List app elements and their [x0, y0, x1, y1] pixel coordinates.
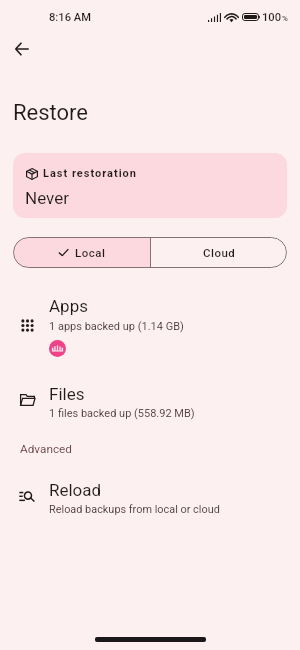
button[interactable]: Cloud — [151, 237, 287, 268]
button[interactable]: Last restoration — [13, 153, 287, 218]
button[interactable]: Files — [0, 376, 300, 422]
staticText: Last restoration — [43, 167, 137, 180]
button[interactable]: Back — [6, 33, 38, 65]
staticText: Restore — [13, 100, 89, 126]
button[interactable]: Reload — [0, 472, 300, 518]
button[interactable]: Apps — [0, 288, 300, 362]
staticText: 1 files backed up (558.92 MB) — [49, 407, 195, 420]
staticText: Apps — [49, 296, 88, 316]
staticText: 100 — [262, 11, 282, 24]
staticText: Advanced — [20, 442, 72, 456]
staticText: Reload backups from local or cloud — [49, 503, 220, 516]
button[interactable]: Local — [13, 237, 150, 268]
staticText: Never — [25, 188, 69, 208]
staticText: Local — [75, 246, 106, 259]
staticText: Files — [49, 384, 85, 404]
staticText: Cloud — [203, 246, 236, 259]
staticText: 8:16 AM — [49, 11, 92, 24]
staticText: % — [282, 14, 288, 23]
staticText: 1 apps backed up (1.14 GB) — [49, 320, 184, 333]
staticText: Reload — [49, 480, 102, 500]
